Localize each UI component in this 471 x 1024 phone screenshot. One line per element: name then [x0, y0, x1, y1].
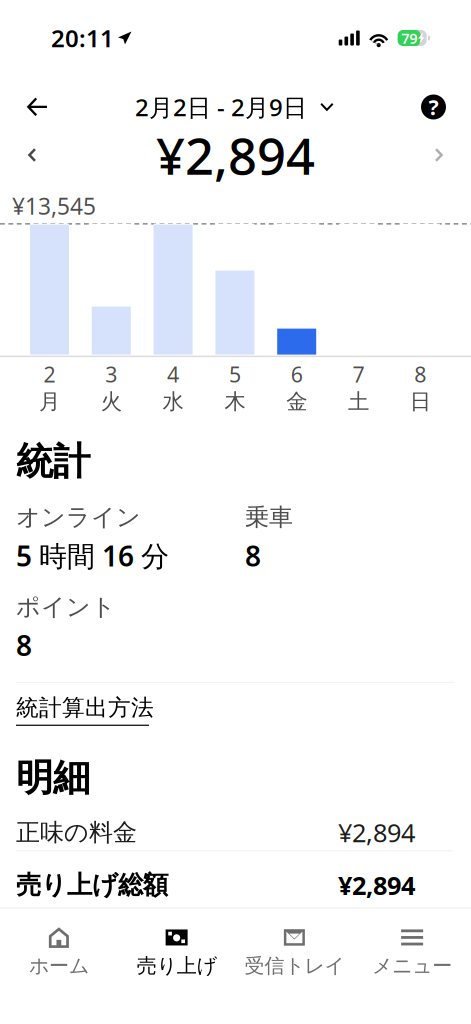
- staticText: 売り上げ: [137, 953, 217, 978]
- button[interactable]: Back: [0, 85, 62, 129]
- staticText: ?: [428, 93, 438, 121]
- staticText: 5 時間 16 分: [16, 537, 169, 574]
- staticText: 20:11: [51, 22, 114, 54]
- staticText: 統計: [16, 439, 90, 484]
- staticText: 金: [286, 388, 307, 415]
- button[interactable]: 売り上げ: [118, 908, 236, 1024]
- staticText: 受信トレイ: [244, 953, 344, 978]
- staticText: 79: [401, 28, 417, 48]
- staticText: 日: [410, 388, 431, 415]
- button[interactable]: メニュー: [353, 908, 471, 1024]
- staticText: ¥13,545: [12, 191, 96, 221]
- staticText: 明細: [16, 755, 90, 801]
- staticText: 6: [291, 360, 303, 388]
- staticText: 4: [167, 360, 179, 388]
- staticText: ¥2,894: [156, 121, 315, 189]
- staticText: 正味の料金: [16, 818, 137, 847]
- staticText: ホーム: [29, 953, 89, 978]
- button[interactable]: 受信トレイ: [235, 908, 353, 1024]
- staticText: 火: [101, 388, 122, 415]
- staticText: 8: [414, 360, 426, 388]
- staticText: 木: [224, 388, 245, 415]
- staticText: 8: [16, 627, 32, 664]
- staticText: 7: [352, 360, 364, 388]
- staticText: 土: [348, 388, 369, 415]
- staticText: メニュー: [372, 953, 452, 978]
- button[interactable]: 統計算出方法: [16, 694, 154, 726]
- staticText: 統計算出方法: [16, 694, 154, 722]
- staticText: 8: [245, 537, 261, 574]
- staticText: 月: [39, 388, 60, 415]
- staticText: 5: [229, 360, 241, 388]
- staticText: 2月2日 - 2月9日: [135, 91, 307, 123]
- button[interactable]: Help: [407, 85, 471, 129]
- staticText: ポイント: [16, 592, 116, 622]
- staticText: オンライン: [16, 502, 141, 532]
- staticText: 乗車: [245, 502, 293, 532]
- button[interactable]: Next week: [419, 133, 471, 177]
- button[interactable]: ホーム: [0, 908, 118, 1024]
- staticText: ¥2,894: [338, 868, 415, 902]
- staticText: 売り上げ総額: [16, 870, 168, 901]
- button[interactable]: 2月2日 - 2月9日: [135, 85, 334, 129]
- staticText: 2: [43, 360, 55, 388]
- staticText: 水: [163, 388, 184, 415]
- staticText: ¥2,894: [338, 816, 415, 849]
- button[interactable]: Previous week: [0, 133, 52, 177]
- staticText: 3: [105, 360, 117, 388]
